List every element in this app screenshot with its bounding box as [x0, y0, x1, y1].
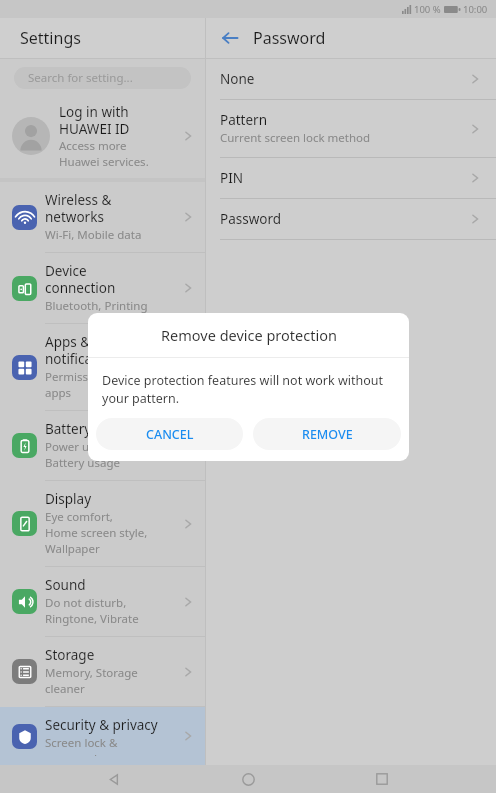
staticText: 10:00 [463, 3, 488, 16]
staticText: Bluetooth, Printing [45, 298, 148, 314]
staticText: Memory, Storage cleaner [45, 665, 138, 697]
staticText: Access more Huawei services. [59, 138, 149, 169]
button[interactable]: Wireless & networks [0, 182, 205, 252]
staticText: Storage [45, 646, 95, 664]
staticText: Eye comfort, Home screen style, Wallpape… [45, 509, 148, 557]
staticText: Current screen lock method [220, 130, 371, 146]
staticText: Pattern [220, 111, 268, 129]
button[interactable]: Log in with HUAWEI ID [0, 96, 205, 178]
staticText: PIN [220, 169, 244, 187]
button[interactable]: Apps & notifications [0, 324, 205, 410]
staticText: Settings [20, 27, 81, 49]
staticText: None [220, 70, 255, 88]
button[interactable]: Display [0, 481, 205, 566]
staticText: Sound [45, 576, 86, 594]
staticText: Battery [45, 420, 92, 438]
staticText: Power usage details, Battery usage [45, 439, 157, 471]
staticText: Device protection features will not work… [102, 372, 395, 407]
staticText: 100 % [414, 3, 441, 16]
button[interactable]: Home [228, 765, 268, 793]
staticText: Wi-Fi, Mobile data [45, 227, 142, 243]
button[interactable]: None [206, 59, 496, 100]
button[interactable]: Device connection [0, 253, 205, 323]
staticText: Password [253, 27, 326, 49]
button[interactable]: Storage [0, 637, 205, 706]
staticText: CANCEL [146, 426, 194, 443]
staticText: Device connection [45, 262, 116, 297]
button[interactable]: Sound [0, 567, 205, 636]
staticText: Screen lock & passwords [45, 735, 118, 756]
staticText: Search for setting... [28, 70, 133, 86]
button[interactable]: Back [215, 23, 245, 53]
button[interactable]: Back [94, 765, 134, 793]
staticText: Permissions, Default apps [45, 369, 157, 401]
button[interactable]: PIN [206, 158, 496, 199]
staticText: Log in with HUAWEI ID [59, 103, 130, 138]
staticText: Apps & notifications [45, 333, 124, 368]
button[interactable]: Battery [0, 411, 205, 480]
button[interactable]: Recent apps [362, 765, 402, 793]
button[interactable]: Password [206, 199, 496, 240]
button[interactable]: Search for setting... [14, 67, 191, 89]
staticText: Security & privacy [45, 716, 158, 734]
staticText: Display [45, 490, 92, 508]
button[interactable]: Security & privacy [0, 707, 205, 765]
staticText: REMOVE [302, 426, 353, 443]
staticText: Do not disturb, Ringtone, Vibrate [45, 595, 139, 627]
staticText: Wireless & networks [45, 191, 112, 226]
staticText: Remove device protection [161, 325, 337, 345]
button[interactable]: REMOVE [253, 418, 401, 450]
button[interactable]: CANCEL [96, 418, 243, 450]
staticText: Password [220, 210, 282, 228]
button[interactable]: Pattern [206, 100, 496, 158]
